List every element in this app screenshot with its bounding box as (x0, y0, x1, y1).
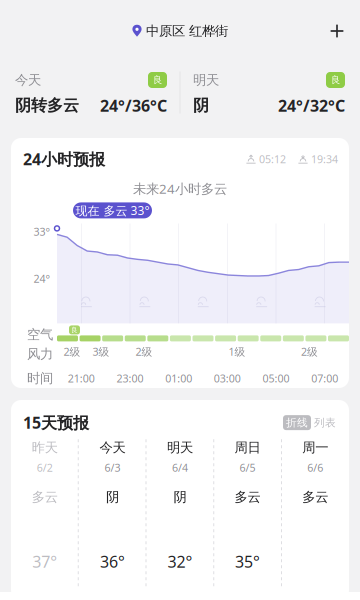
staticText: 3级 (92, 344, 109, 359)
staticText: 01:00 (165, 371, 192, 385)
staticText: 6/4 (172, 461, 188, 475)
staticText: 周日 (235, 439, 261, 456)
staticText: 阴 (173, 489, 186, 505)
staticText: 2级 (301, 344, 318, 359)
button[interactable]: 添加城市 (319, 13, 355, 49)
staticText: 周一 (302, 439, 328, 456)
staticText: 6/3 (104, 461, 120, 475)
staticText: 多云 (302, 489, 328, 505)
staticText: 24°/32°C (278, 95, 345, 116)
staticText: 24°/36°C (100, 95, 167, 116)
staticText: 阴 (106, 489, 119, 505)
staticText: 05:00 (262, 371, 289, 385)
staticText: 中原区 红桦街 (146, 23, 228, 39)
staticText: 折线 (286, 416, 308, 429)
staticText: 35° (235, 551, 260, 572)
button[interactable]: 列表 (311, 415, 339, 430)
staticText: 07:00 (311, 371, 338, 385)
staticText: 空气 (27, 326, 53, 343)
staticText: 阴 (193, 96, 209, 115)
staticText: 列表 (314, 416, 336, 429)
staticText: 明天 (193, 72, 219, 88)
staticText: 21:00 (68, 371, 95, 385)
staticText: 03:00 (214, 371, 241, 385)
staticText: 今天 (15, 72, 41, 88)
staticText: 6/6 (307, 461, 323, 475)
staticText: 2级 (135, 344, 152, 359)
staticText: 2级 (63, 344, 80, 359)
staticText: 现在 多云 33° (75, 202, 149, 218)
staticText: 6/5 (240, 461, 256, 475)
staticText: 19:34 (311, 152, 338, 166)
staticText: 多云 (32, 489, 58, 505)
staticText: 多云 (235, 489, 261, 505)
staticText: 33° (33, 224, 50, 239)
staticText: 未来24小时多云 (133, 180, 227, 197)
staticText: 6/2 (37, 461, 53, 475)
staticText: 明天 (167, 439, 193, 456)
staticText: 23:00 (116, 371, 143, 385)
staticText: 昨天 (32, 439, 58, 456)
staticText: 良 (71, 326, 78, 334)
staticText: 15天预报 (23, 412, 89, 433)
staticText: 37° (32, 551, 57, 572)
staticText: 良 (331, 74, 340, 86)
staticText: 36° (100, 551, 125, 572)
staticText: 风力 (27, 346, 53, 362)
staticText: 时间 (27, 370, 53, 387)
staticText: 05:12 (259, 152, 286, 166)
staticText: 24小时预报 (23, 148, 105, 170)
staticText: 1级 (228, 344, 245, 359)
staticText: 32° (167, 551, 192, 572)
staticText: 良 (153, 74, 162, 86)
staticText: 阴转多云 (15, 96, 79, 115)
staticText: 24° (33, 272, 50, 286)
button[interactable]: 折线 (283, 415, 311, 430)
staticText: 今天 (99, 439, 125, 456)
